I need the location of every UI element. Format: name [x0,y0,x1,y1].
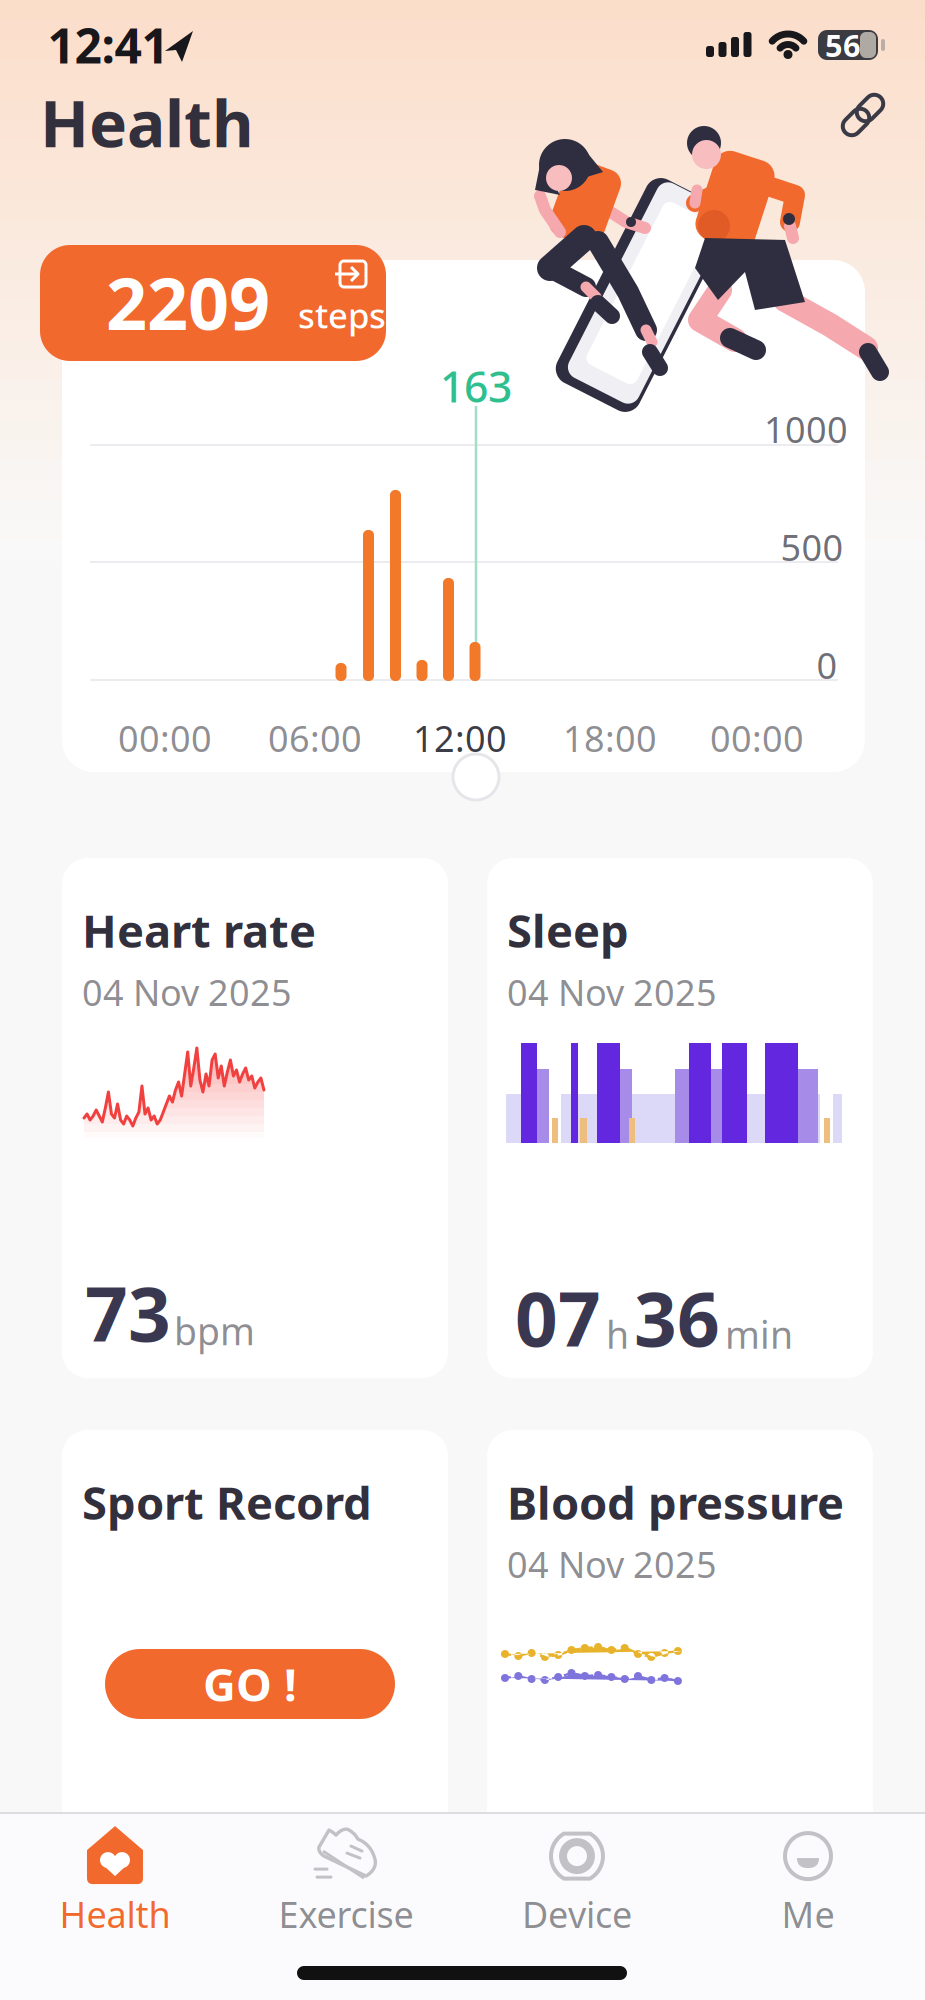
button[interactable]: 2209 [40,245,386,361]
staticText: 56 [825,25,861,65]
staticText: Device [522,1890,632,1938]
staticText: Health [59,1890,170,1938]
staticText: 12:41 [47,13,168,77]
staticText: 163 [440,358,512,414]
button[interactable]: Sport Record [62,1430,448,1950]
button[interactable]: Me [728,1827,888,1937]
staticText: 36 [634,1268,720,1367]
staticText: GO ! [203,1654,297,1714]
staticText: 73 [85,1263,171,1362]
staticText: 06:00 [268,714,362,762]
staticText: h [606,1310,629,1359]
staticText: 0 [816,641,837,689]
staticText: 18:00 [563,714,657,762]
staticText: 12:00 [413,714,507,762]
button[interactable]: Sleep [487,858,873,1378]
staticText: 04 Nov 2025 [507,968,717,1016]
button[interactable]: Drag handle [453,754,499,800]
button[interactable]: Blood pressure [487,1430,873,1950]
staticText: bpm [174,1306,255,1356]
staticText: steps [298,292,386,338]
staticText: min [725,1310,793,1359]
staticText: 1000 [764,405,848,453]
staticText: 07 [515,1268,601,1367]
staticText: Me [781,1890,834,1938]
button[interactable]: Exercise [266,1827,426,1937]
button[interactable]: Heart rate [62,858,448,1378]
staticText: 04 Nov 2025 [507,1540,717,1588]
staticText: 04 Nov 2025 [82,968,292,1016]
button[interactable]: Device [497,1827,657,1937]
staticText: Health [40,80,254,165]
staticText: Exercise [278,1890,413,1938]
staticText: Sport Record [82,1472,372,1532]
button[interactable]: Health [35,1827,195,1937]
staticText: Sleep [507,900,629,960]
staticText: 500 [780,523,843,571]
staticText: 00:00 [710,714,804,762]
staticText: Blood pressure [507,1472,844,1532]
staticText: 00:00 [118,714,212,762]
button[interactable]: GO ! [105,1649,395,1719]
staticText: Heart rate [82,900,316,960]
staticText: 2209 [106,254,270,350]
button[interactable]: Link device [828,80,898,150]
